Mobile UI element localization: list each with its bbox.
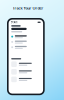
staticText: 9:41 <box>11 20 18 24</box>
staticText: Track Your Order <box>12 5 43 11</box>
